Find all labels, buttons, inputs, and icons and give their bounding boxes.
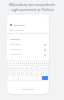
- button[interactable]: [16, 66, 19, 70]
- button[interactable]: [45, 61, 48, 65]
- button[interactable]: [29, 71, 33, 75]
- button[interactable]: More: [7, 52, 49, 57]
- button[interactable]: [24, 71, 28, 75]
- button[interactable]: Search: [42, 76, 48, 80]
- button[interactable]: [34, 66, 38, 70]
- staticText: Wyszukaj we wszystkich: [9, 2, 55, 8]
- button[interactable]: [8, 66, 11, 70]
- button[interactable]: [8, 71, 11, 75]
- button[interactable]: [33, 61, 36, 65]
- staticText: ogloszeniach w Polsce: [11, 7, 54, 13]
- button[interactable]: [37, 61, 40, 65]
- button[interactable]: [25, 61, 28, 65]
- button[interactable]: [12, 66, 15, 70]
- button[interactable]: Search: [7, 22, 49, 28]
- button[interactable]: [29, 66, 33, 70]
- button[interactable]: [16, 71, 19, 75]
- button[interactable]: [39, 71, 43, 75]
- button[interactable]: [24, 66, 28, 70]
- button[interactable]: [20, 71, 23, 75]
- button[interactable]: [8, 61, 12, 65]
- button[interactable]: More: [7, 47, 49, 52]
- button[interactable]: [12, 71, 15, 75]
- button[interactable]: [21, 61, 24, 65]
- button[interactable]: More: [7, 42, 49, 47]
- button[interactable]: [41, 61, 44, 65]
- button[interactable]: [20, 66, 23, 70]
- button[interactable]: [29, 61, 32, 65]
- button[interactable]: [13, 61, 16, 65]
- button[interactable]: [7, 27, 49, 33]
- button[interactable]: [17, 61, 20, 65]
- button[interactable]: [44, 71, 48, 75]
- button[interactable]: [39, 66, 43, 70]
- button[interactable]: [44, 66, 48, 70]
- button[interactable]: [34, 71, 38, 75]
